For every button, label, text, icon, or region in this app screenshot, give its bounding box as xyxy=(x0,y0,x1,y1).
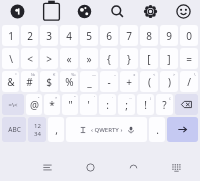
staticText: " xyxy=(68,98,73,112)
button[interactable]: 9 xyxy=(160,25,178,46)
button[interactable]: Search xyxy=(101,0,134,23)
staticText: ¡ xyxy=(150,95,152,100)
staticText: 3 xyxy=(46,29,52,43)
staticText: < xyxy=(27,52,33,66)
staticText: { xyxy=(107,52,111,66)
staticText: \ xyxy=(9,52,13,66)
button[interactable]: « xyxy=(60,48,78,69)
staticText: 2 xyxy=(27,29,33,43)
button[interactable]: > xyxy=(40,48,58,69)
staticText: × xyxy=(55,95,58,100)
staticText: / xyxy=(187,75,191,89)
button[interactable]: » xyxy=(80,48,98,69)
button[interactable]: [ xyxy=(140,48,158,69)
staticText: 1 xyxy=(8,29,14,43)
button[interactable]: Back xyxy=(112,154,155,181)
staticText: € xyxy=(53,72,56,77)
staticText: ; xyxy=(125,98,128,112)
staticText: * xyxy=(49,98,55,112)
button[interactable]: @ xyxy=(26,94,42,115)
button[interactable]: 8 xyxy=(140,25,158,46)
staticText: : xyxy=(106,98,109,112)
button[interactable]: \ xyxy=(2,48,19,69)
staticText: @ xyxy=(30,98,39,112)
staticText: 4 xyxy=(66,29,72,43)
button[interactable]: 4 xyxy=(60,25,78,46)
staticText: ( xyxy=(148,75,151,89)
staticText: • xyxy=(38,95,40,100)
button[interactable]: Settings xyxy=(134,0,167,23)
staticText: ) xyxy=(168,75,171,89)
button[interactable]: Enter xyxy=(167,117,198,142)
staticText: 12 xyxy=(34,122,41,130)
staticText: =\< xyxy=(8,101,18,109)
staticText: 0 xyxy=(186,29,192,43)
staticText: ! xyxy=(144,98,147,112)
button[interactable]: / xyxy=(180,71,198,92)
button[interactable]: < xyxy=(21,48,38,69)
button[interactable]: - xyxy=(100,71,118,92)
staticText: ± xyxy=(133,72,136,77)
button[interactable]: ; xyxy=(118,94,135,115)
button[interactable]: Language xyxy=(0,0,34,23)
button[interactable]: Hide keyboard xyxy=(155,154,198,181)
button[interactable]: * xyxy=(44,94,60,115)
staticText: “ xyxy=(74,95,76,100)
button[interactable]: ABC xyxy=(2,117,26,142)
staticText: ‹ QWERTY › xyxy=(91,126,123,134)
staticText: № xyxy=(31,72,36,77)
button[interactable]: 7 xyxy=(120,25,138,46)
button[interactable]: 5 xyxy=(80,25,98,46)
button[interactable]: Numbers xyxy=(28,117,46,142)
staticText: ¿ xyxy=(169,95,171,100)
staticText: , xyxy=(55,123,58,137)
button[interactable]: Emoji xyxy=(167,0,200,23)
button[interactable]: $ xyxy=(40,71,58,92)
button[interactable]: 1 xyxy=(2,25,19,46)
staticText: 34 xyxy=(34,130,41,138)
staticText: ? xyxy=(162,98,167,112)
button[interactable]: ) xyxy=(160,71,178,92)
staticText: . xyxy=(156,123,159,137)
button[interactable]: % xyxy=(60,71,78,92)
staticText: % xyxy=(65,75,74,89)
button[interactable]: _ xyxy=(80,71,98,92)
staticText: $ xyxy=(46,75,52,89)
button[interactable]: } xyxy=(120,48,138,69)
button[interactable]: . xyxy=(149,117,165,142)
button[interactable]: =\< xyxy=(2,94,24,115)
button[interactable]: Clipboard xyxy=(34,0,68,23)
button[interactable]: ? xyxy=(156,94,173,115)
button[interactable]: ( xyxy=(140,71,158,92)
button[interactable]: Backspace xyxy=(175,94,198,115)
staticText: \ xyxy=(194,72,196,77)
button[interactable]: & xyxy=(2,71,19,92)
button[interactable]: ! xyxy=(137,94,154,115)
button[interactable]: + xyxy=(120,71,138,92)
button[interactable]: Home xyxy=(69,154,112,181)
staticText: 9 xyxy=(166,29,172,43)
staticText: 7 xyxy=(126,29,132,43)
button[interactable]: # xyxy=(21,71,38,92)
button[interactable]: Recent apps xyxy=(26,154,69,181)
staticText: — xyxy=(92,72,96,77)
staticText: ‰ xyxy=(71,72,76,77)
staticText: » xyxy=(86,52,92,66)
button[interactable]: 2 xyxy=(21,25,38,46)
button[interactable]: 3 xyxy=(40,25,58,46)
button[interactable]: ] xyxy=(160,48,178,69)
staticText: > xyxy=(46,52,52,66)
button[interactable]: " xyxy=(62,94,78,115)
button[interactable]: 0 xyxy=(180,25,198,46)
button[interactable]: Translate xyxy=(68,0,101,23)
button[interactable]: = xyxy=(180,48,198,69)
button[interactable]: 6 xyxy=(100,25,118,46)
staticText: · xyxy=(112,95,114,100)
staticText: _ xyxy=(87,75,92,89)
button[interactable]: Space xyxy=(66,117,147,142)
button[interactable]: , xyxy=(48,117,64,142)
button[interactable]: : xyxy=(99,94,116,115)
staticText: 8 xyxy=(146,29,152,43)
button[interactable]: { xyxy=(100,48,118,69)
button[interactable]: ' xyxy=(80,94,97,115)
